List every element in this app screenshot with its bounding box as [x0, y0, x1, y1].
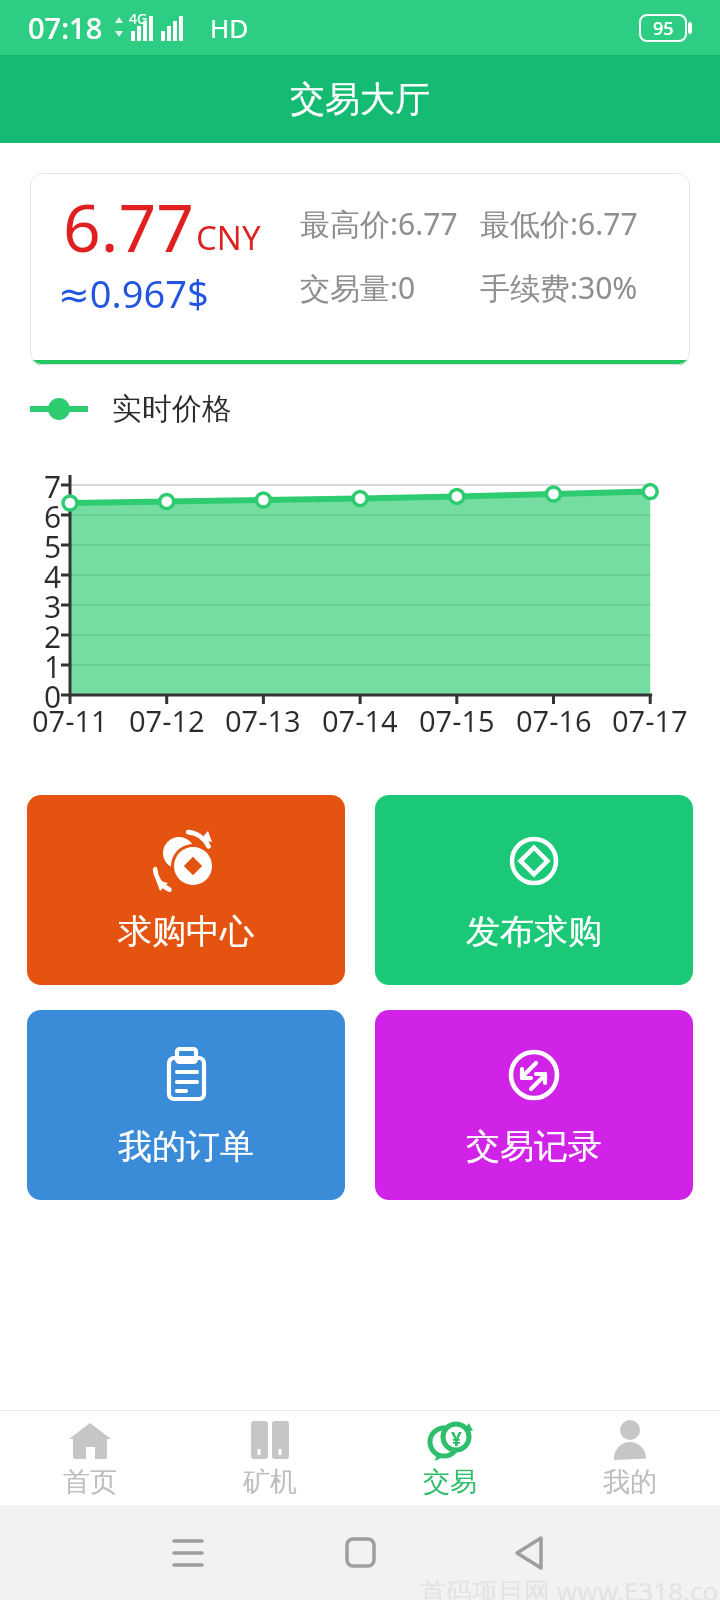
staticText: 交易 — [423, 1465, 477, 1499]
button[interactable]: 求购中心 — [27, 795, 345, 985]
staticText: 07-16 — [516, 701, 592, 739]
staticText: 4 — [44, 556, 62, 594]
staticText: 矿机 — [243, 1465, 297, 1499]
staticText: 3 — [44, 586, 62, 624]
staticText: 4G — [129, 9, 148, 28]
button[interactable]: 发布求购 — [375, 795, 693, 985]
staticText: 95 — [653, 16, 674, 41]
staticText: 07-13 — [225, 701, 301, 739]
staticText: 07:18 — [28, 8, 103, 47]
staticText: 发布求购 — [466, 910, 602, 953]
button[interactable]: 首页 — [0, 1411, 180, 1505]
button[interactable]: 我的 — [540, 1411, 720, 1505]
staticText: 交易记录 — [466, 1125, 602, 1168]
staticText: 交易大厅 — [290, 77, 430, 121]
button[interactable]: 我的订单 — [27, 1010, 345, 1200]
staticText: 首码项目网 www.E318.com — [420, 1573, 720, 1600]
button[interactable]: 交易记录 — [375, 1010, 693, 1200]
staticText: 实时价格 — [112, 390, 232, 428]
staticText: 首页 — [63, 1465, 117, 1499]
staticText: 5 — [44, 526, 62, 564]
staticText: 7 — [44, 466, 62, 504]
staticText: ≈0.967$ — [58, 267, 209, 319]
staticText: 求购中心 — [118, 910, 254, 953]
staticText: 2 — [44, 616, 62, 654]
staticText: 07-11 — [32, 701, 108, 739]
staticText: 最高价:6.77 — [300, 203, 458, 244]
staticText: 1 — [44, 646, 62, 684]
staticText: HD — [210, 10, 249, 45]
staticText: 07-17 — [612, 701, 688, 739]
button[interactable]: ¥ — [360, 1411, 540, 1505]
staticText: 我的订单 — [118, 1125, 254, 1168]
staticText: 6.77 — [63, 181, 194, 271]
staticText: CNY — [196, 215, 261, 260]
staticText: 手续费:30% — [480, 267, 638, 308]
staticText: 07-15 — [419, 701, 495, 739]
button[interactable]: 矿机 — [180, 1411, 360, 1505]
staticText: 我的 — [603, 1465, 657, 1499]
staticText: 07-12 — [129, 701, 205, 739]
staticText: 0 — [44, 676, 62, 714]
staticText: 07-14 — [322, 701, 398, 739]
staticText: 6 — [44, 496, 62, 534]
staticText: 交易量:0 — [300, 267, 416, 308]
staticText: 最低价:6.77 — [480, 203, 638, 244]
staticText: ¥ — [451, 1426, 462, 1452]
